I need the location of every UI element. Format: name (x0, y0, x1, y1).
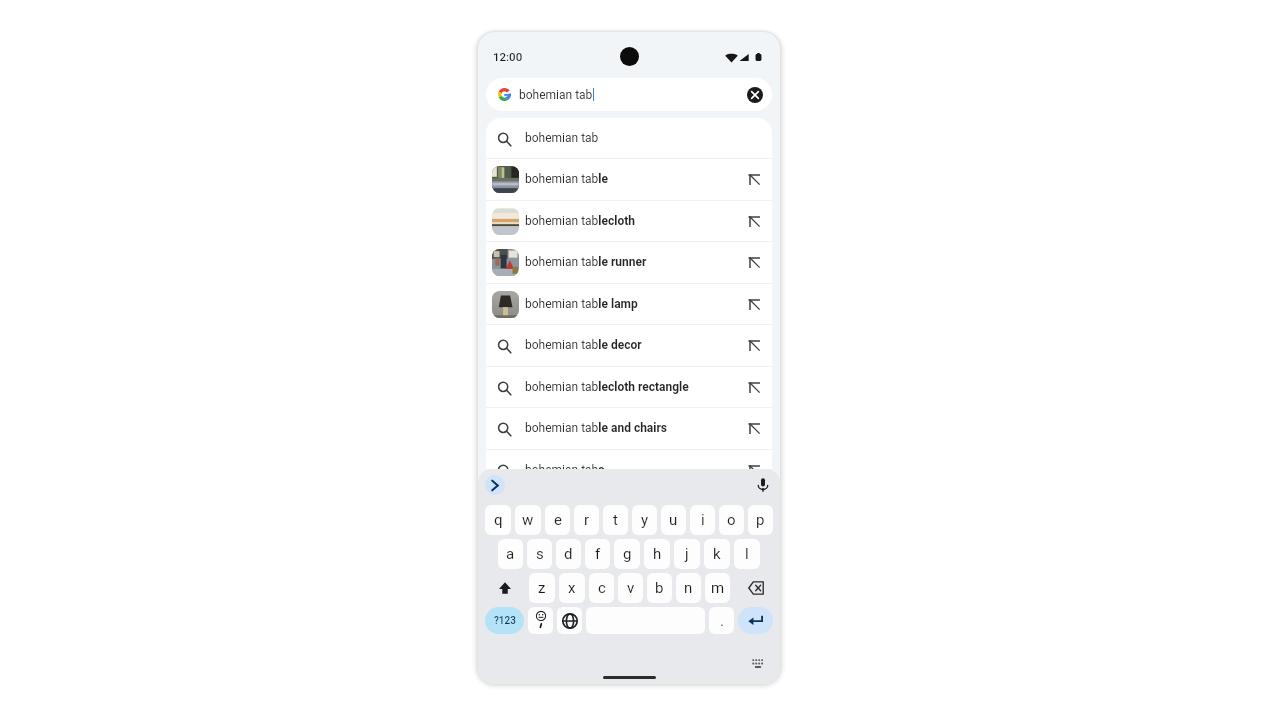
staticText: 12:00 (493, 50, 523, 63)
staticText: r (584, 511, 590, 529)
staticText: g (623, 545, 632, 563)
button[interactable]: l (734, 539, 760, 569)
staticText: bohemian tablecloth rectangle (525, 380, 689, 394)
staticText: . (720, 612, 724, 630)
staticText: bohemian tabs (525, 463, 605, 469)
button[interactable]: w (515, 505, 541, 535)
staticText: s (536, 545, 544, 563)
button[interactable]: d (556, 539, 581, 569)
button[interactable]: g (614, 539, 640, 569)
button[interactable]: . (709, 607, 734, 634)
staticText: bohemian tab (519, 88, 593, 102)
staticText: bohemian table decor (525, 338, 642, 352)
staticText: m (711, 579, 725, 597)
staticText: f (595, 545, 601, 563)
button[interactable]: Change language (557, 607, 582, 634)
button[interactable]: bohemian tab (486, 118, 772, 158)
button[interactable]: bohemian table (486, 159, 772, 199)
button[interactable]: Emoji (528, 607, 553, 634)
button[interactable]: j (674, 539, 700, 569)
staticText: k (713, 545, 721, 563)
button[interactable]: Enter (738, 607, 773, 634)
button[interactable]: m (705, 573, 730, 603)
staticText: p (756, 511, 765, 529)
staticText: a (506, 545, 515, 563)
button[interactable]: bohemian table and chairs (486, 408, 772, 448)
staticText: t (613, 511, 618, 529)
button[interactable]: Insert suggestion (741, 457, 767, 469)
button[interactable]: More suggestions (485, 475, 505, 495)
button[interactable]: e (545, 505, 570, 535)
staticText: z (538, 579, 546, 597)
staticText: bohemian table and chairs (525, 421, 668, 435)
staticText: bohemian tablecloth (525, 214, 635, 228)
staticText: d (564, 545, 573, 563)
button[interactable]: q (485, 505, 511, 535)
button[interactable]: Clear search (742, 82, 768, 108)
button[interactable]: Insert suggestion (741, 208, 767, 234)
staticText: bohemian tab (525, 131, 599, 145)
button[interactable]: bohemian tablecloth rectangle (486, 367, 772, 407)
button[interactable]: i (690, 505, 715, 535)
button[interactable]: Insert suggestion (741, 415, 767, 441)
staticText: w (522, 511, 534, 529)
button[interactable]: Backspace (734, 573, 773, 603)
button[interactable]: r (574, 505, 599, 535)
staticText: bohemian table runner (525, 255, 647, 269)
staticText: e (554, 511, 562, 529)
button[interactable]: a (498, 539, 523, 569)
staticText: h (653, 545, 662, 563)
button[interactable]: c (589, 573, 614, 603)
staticText: v (627, 579, 635, 597)
button[interactable]: Insert suggestion (741, 332, 767, 358)
staticText: x (568, 579, 576, 597)
button[interactable]: z (529, 573, 555, 603)
button[interactable]: t (603, 505, 628, 535)
staticText: bohemian table lamp (525, 297, 638, 311)
button[interactable]: Insert suggestion (741, 291, 767, 317)
button[interactable]: bohemian tablecloth (486, 201, 772, 241)
button[interactable]: y (632, 505, 657, 535)
button[interactable]: Switch keyboard (752, 659, 764, 668)
button[interactable]: f (585, 539, 610, 569)
button[interactable]: o (719, 505, 744, 535)
button[interactable]: v (618, 573, 643, 603)
button[interactable]: bohemian table decor (486, 325, 772, 365)
button[interactable]: Insert suggestion (741, 374, 767, 400)
staticText: l (745, 545, 749, 563)
staticText: y (641, 511, 649, 529)
button[interactable]: bohemian tab (486, 78, 772, 111)
button[interactable]: ?123 (485, 607, 524, 634)
button[interactable]: s (527, 539, 552, 569)
staticText: q (494, 511, 503, 529)
button[interactable]: Shift (485, 573, 525, 603)
staticText: ?123 (494, 615, 516, 627)
button[interactable]: h (644, 539, 670, 569)
staticText: j (685, 545, 689, 563)
button[interactable]: Insert suggestion (741, 166, 767, 192)
button[interactable]: bohemian table lamp (486, 284, 772, 324)
button[interactable]: u (661, 505, 686, 535)
staticText: u (669, 511, 678, 529)
button[interactable]: p (748, 505, 773, 535)
button[interactable]: n (676, 573, 701, 603)
button[interactable]: bohemian table runner (486, 242, 772, 282)
button[interactable]: bohemian tabs (486, 450, 772, 469)
staticText: b (655, 579, 664, 597)
staticText: i (701, 511, 705, 529)
button[interactable]: b (647, 573, 672, 603)
button[interactable]: Voice input (752, 474, 774, 496)
button[interactable]: k (704, 539, 730, 569)
staticText: c (598, 579, 606, 597)
staticText: n (684, 579, 693, 597)
button[interactable]: Insert suggestion (741, 249, 767, 275)
staticText: bohemian table (525, 172, 608, 186)
staticText: o (727, 511, 736, 529)
button[interactable]: x (559, 573, 585, 603)
